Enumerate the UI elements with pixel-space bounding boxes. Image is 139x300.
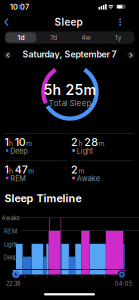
staticText: 28 [84, 136, 98, 148]
staticText: Sleep [54, 16, 82, 28]
staticText: Light [4, 241, 17, 248]
staticText: Deep [3, 254, 17, 261]
staticText: 1y [115, 33, 122, 42]
staticText: Total Sleep [48, 98, 91, 108]
staticText: Awake [77, 174, 100, 183]
staticText: 10 [15, 136, 26, 148]
staticText: m [78, 167, 84, 175]
staticText: 1 [4, 163, 8, 176]
button[interactable]: More options [115, 17, 125, 27]
button[interactable]: 4w [69, 31, 102, 44]
staticText: Saturday, September 7 [22, 49, 116, 59]
staticText: Sleep Timeline [4, 192, 81, 205]
staticText: 22:38 [6, 280, 20, 287]
staticText: m [28, 167, 34, 175]
staticText: 10:07 [10, 3, 29, 11]
button[interactable]: Previous day [3, 50, 13, 60]
staticText: 7d [50, 33, 57, 42]
staticText: REM [4, 228, 17, 235]
staticText: 47 [15, 163, 28, 176]
button[interactable]: Back [2, 16, 12, 28]
staticText: REM [10, 174, 26, 183]
staticText: 04:05 [115, 280, 132, 287]
staticText: m [26, 139, 32, 148]
staticText: 2 [71, 136, 78, 148]
button[interactable]: 1d [5, 31, 37, 44]
staticText: Awake [1, 215, 19, 222]
staticText: 4w [81, 33, 90, 42]
staticText: m [99, 139, 105, 148]
staticText: h [9, 167, 13, 175]
staticText: Light [77, 147, 93, 155]
button[interactable]: Next day [126, 50, 136, 60]
staticText: 5h 25m [43, 81, 96, 98]
staticText: 1 [4, 136, 8, 148]
button[interactable]: 1y [102, 31, 134, 44]
button[interactable]: 7d [37, 31, 70, 44]
staticText: h [9, 139, 13, 148]
staticText: h [78, 139, 82, 148]
staticText: Deep [10, 147, 27, 155]
staticText: 1d [17, 33, 24, 42]
staticText: 2 [71, 163, 78, 176]
